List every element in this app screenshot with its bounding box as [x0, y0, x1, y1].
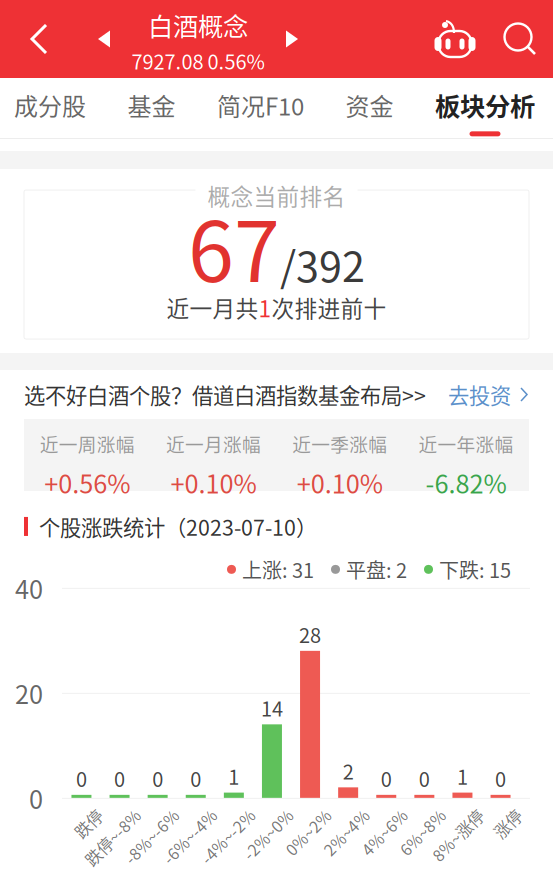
staticText: +0.10% [297, 464, 383, 501]
staticText: 平盘: 2 [346, 555, 407, 584]
staticText: 2%~4% [301, 804, 358, 827]
staticText: 0 [381, 764, 392, 793]
staticText: 0 [419, 764, 430, 793]
button[interactable]: 基金 [127, 78, 175, 138]
staticText: 4%~6% [339, 804, 396, 827]
staticText: -4%~-2% [175, 804, 244, 827]
staticText: 近一季涨幅 [292, 430, 387, 457]
staticText: -6.82% [425, 464, 506, 501]
staticText: 资金 [345, 88, 393, 122]
button[interactable]: 板块分析 [435, 78, 535, 138]
button[interactable]: 资金 [345, 78, 393, 138]
staticText: 跌停 [59, 804, 91, 827]
button[interactable]: Back [0, 0, 78, 78]
staticText: 0 [190, 764, 201, 793]
staticText: 概念当前排名 [207, 179, 345, 212]
staticText: 0 [114, 764, 125, 793]
staticText: 0 [76, 764, 87, 793]
staticText: 白酒概念 [148, 7, 248, 43]
staticText: 2 [343, 756, 354, 785]
staticText: 近一周涨幅 [40, 430, 135, 457]
staticText: 20 [15, 674, 43, 711]
staticText: 近一月涨幅 [166, 430, 261, 457]
staticText: /392 [280, 234, 365, 294]
staticText: 次排进前十 [271, 291, 386, 324]
staticText: 近一年涨幅 [418, 430, 513, 457]
staticText: 跌停~-8% [59, 804, 130, 827]
button[interactable]: Next stock [266, 0, 318, 78]
staticText: 基金 [127, 88, 175, 122]
staticText: 1 [457, 762, 468, 791]
staticText: 涨停 [479, 804, 511, 827]
staticText: 0 [152, 764, 163, 793]
staticText: 14 [261, 693, 283, 722]
staticText: 40 [15, 569, 43, 606]
staticText: -2%~0% [219, 804, 282, 827]
staticText: 去投资 [448, 379, 511, 410]
staticText: 1 [258, 291, 271, 324]
staticText: 7927.08 0.56% [131, 46, 264, 75]
staticText: 1 [228, 762, 239, 791]
staticText: 28 [299, 620, 321, 649]
button[interactable]: 选不好白酒个股？借道白酒指数基金布局>> [0, 370, 553, 419]
staticText: 简况F10 [217, 88, 304, 122]
button[interactable]: Previous stock [78, 0, 130, 78]
button[interactable]: Search [487, 0, 553, 78]
button[interactable]: AI assistant [423, 0, 487, 78]
staticText: 0 [29, 779, 43, 816]
staticText: +0.56% [44, 464, 130, 501]
staticText: 成分股 [14, 88, 86, 122]
staticText: 8%~涨停 [407, 804, 472, 827]
staticText: 67 [188, 186, 280, 306]
staticText: 6%~8% [377, 804, 434, 827]
staticText: 下跌: 15 [439, 555, 511, 584]
button[interactable]: 成分股 [14, 78, 86, 138]
staticText: 近一月共 [166, 291, 258, 324]
staticText: -6%~-4% [137, 804, 206, 827]
staticText: 0%~2% [263, 804, 320, 827]
staticText: 0 [495, 764, 506, 793]
staticText: 板块分析 [435, 87, 535, 123]
staticText: 上涨: 31 [242, 555, 314, 584]
staticText: 选不好白酒个股？借道白酒指数基金布局>> [24, 379, 426, 410]
staticText: -8%~-6% [99, 804, 168, 827]
staticText: +0.10% [170, 464, 256, 501]
staticText: 个股涨跌统计（2023-07-10） [39, 511, 317, 542]
button[interactable]: 简况F10 [217, 78, 304, 138]
